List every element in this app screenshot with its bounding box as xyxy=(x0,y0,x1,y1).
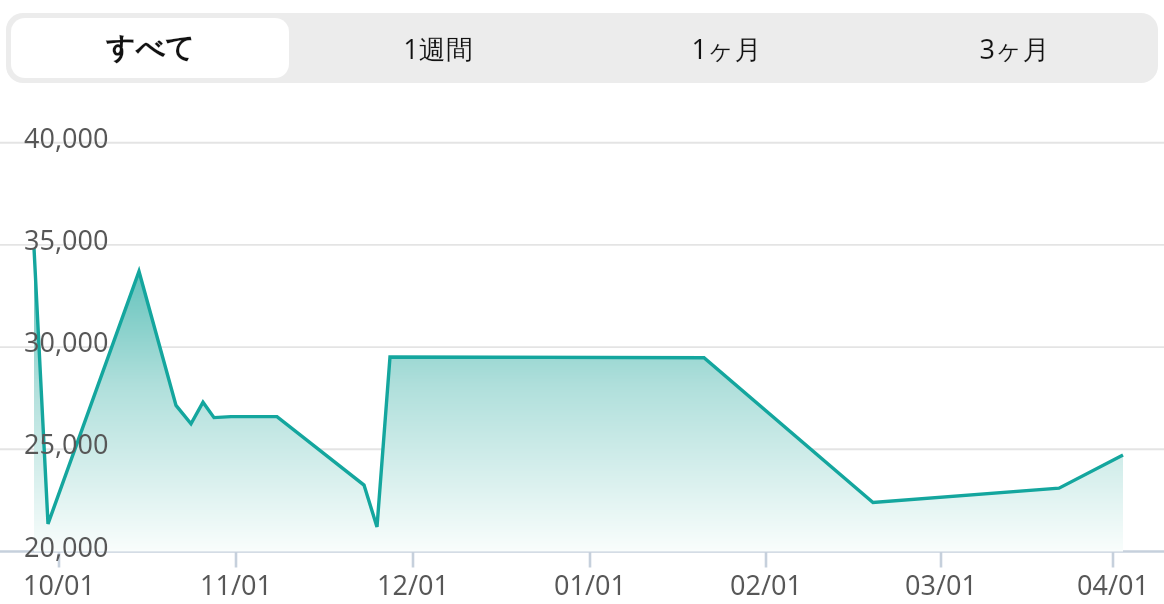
button[interactable]: 1ヶ月 xyxy=(587,18,865,78)
button[interactable]: すべて xyxy=(11,18,289,78)
staticText: 12/01 xyxy=(377,566,449,603)
staticText: 20,000 xyxy=(24,528,109,565)
staticText: 02/01 xyxy=(730,566,802,603)
button[interactable]: 3ヶ月 xyxy=(875,18,1153,78)
staticText: 30,000 xyxy=(24,323,109,360)
staticText: 35,000 xyxy=(24,221,109,258)
staticText: 03/01 xyxy=(905,566,977,603)
staticText: 40,000 xyxy=(24,119,109,156)
staticText: 11/01 xyxy=(200,566,272,603)
staticText: 04/01 xyxy=(1077,566,1149,603)
staticText: 01/01 xyxy=(554,566,626,603)
staticText: すべて xyxy=(105,30,195,67)
staticText: 10/01 xyxy=(23,566,95,603)
staticText: 25,000 xyxy=(24,425,109,462)
button[interactable]: 1週間 xyxy=(299,18,577,78)
staticText: 3ヶ月 xyxy=(979,30,1050,67)
staticText: 1週間 xyxy=(403,30,473,67)
staticText: 1ヶ月 xyxy=(691,30,762,67)
